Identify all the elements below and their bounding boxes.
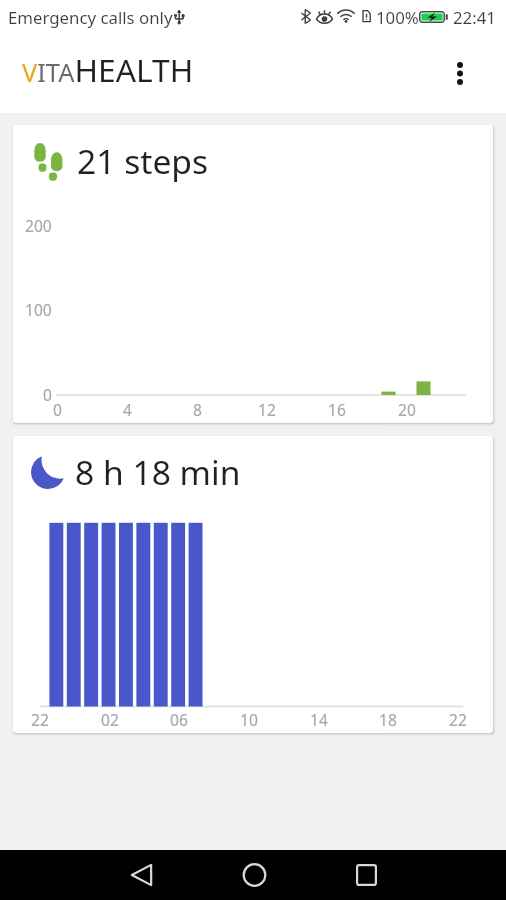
staticText: 200 bbox=[25, 215, 52, 236]
staticText: 06 bbox=[170, 709, 188, 730]
staticText: 16 bbox=[328, 399, 346, 420]
button[interactable]: Back bbox=[113, 853, 169, 897]
button[interactable]: Recent apps bbox=[338, 853, 394, 897]
staticText: 0 bbox=[53, 399, 62, 420]
staticText: 22:41 bbox=[453, 6, 496, 29]
staticText: 8 bbox=[193, 399, 202, 420]
staticText: 18 bbox=[379, 709, 397, 730]
button[interactable]: 21 steps bbox=[13, 125, 493, 423]
staticText: 12 bbox=[258, 399, 276, 420]
staticText: 100 bbox=[25, 299, 52, 320]
staticText: 0 bbox=[43, 384, 52, 405]
staticText: VITAHEALTH bbox=[22, 48, 194, 91]
staticText: 02 bbox=[101, 709, 119, 730]
staticText: 21 steps bbox=[77, 138, 209, 184]
staticText: 100% bbox=[376, 6, 419, 29]
staticText: 20 bbox=[398, 399, 416, 420]
button[interactable]: Home bbox=[226, 853, 282, 897]
button[interactable]: More options bbox=[436, 49, 484, 97]
staticText: Emergency calls only bbox=[8, 6, 173, 29]
staticText: 8 h 18 min bbox=[75, 449, 241, 495]
staticText: 22 bbox=[449, 709, 467, 730]
staticText: 4 bbox=[123, 399, 132, 420]
staticText: 10 bbox=[240, 709, 258, 730]
staticText: 22 bbox=[31, 709, 49, 730]
staticText: 14 bbox=[310, 709, 328, 730]
button[interactable]: 8 h 18 min bbox=[13, 436, 493, 733]
